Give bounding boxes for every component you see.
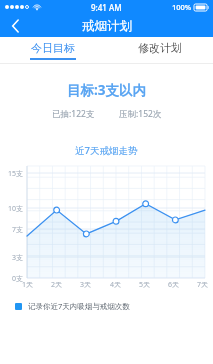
staticText: 10支: [8, 204, 24, 214]
staticText: 1天: [22, 280, 34, 290]
staticText: 今日目标: [31, 41, 75, 55]
button[interactable]: Back: [0, 14, 30, 37]
staticText: 已抽:122支: [52, 108, 95, 120]
staticText: 目标:3支以内: [67, 81, 147, 99]
button[interactable]: 修改计划: [106, 37, 213, 63]
staticText: 7支: [12, 225, 24, 235]
staticText: 戒烟计划: [82, 18, 132, 34]
staticText: 压制:152次: [119, 108, 162, 120]
staticText: 100%: [172, 2, 192, 12]
staticText: 3支: [12, 253, 24, 263]
staticText: 7天: [197, 280, 209, 290]
staticText: 4天: [110, 280, 122, 290]
staticText: 近7天戒烟走势: [75, 144, 138, 157]
button[interactable]: 今日目标: [0, 37, 106, 63]
staticText: 0支: [12, 274, 24, 284]
staticText: 15支: [8, 169, 24, 179]
staticText: 6天: [168, 280, 180, 290]
staticText: 修改计划: [138, 41, 182, 55]
staticText: 记录你近7天内吸烟与戒烟次数: [28, 301, 130, 311]
staticText: 3天: [80, 280, 92, 290]
staticText: 2天: [51, 280, 63, 290]
staticText: 9:41 AM: [91, 2, 122, 13]
staticText: 5天: [139, 280, 151, 290]
